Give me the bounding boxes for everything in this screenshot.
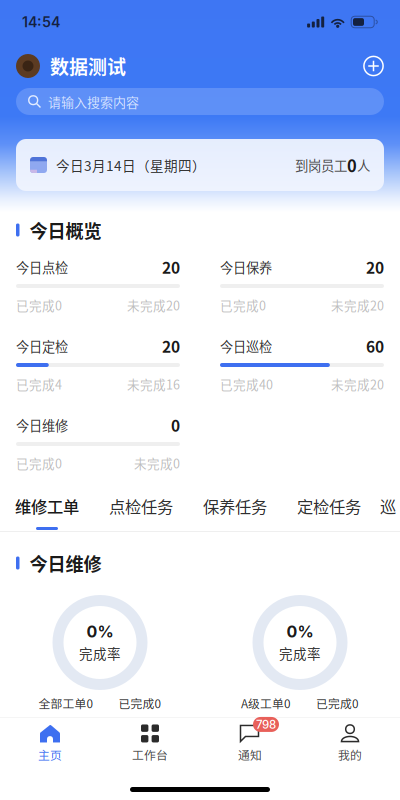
staticText: 今日3月14日（星期四） <box>56 155 206 175</box>
button[interactable]: 新增 <box>363 55 384 76</box>
staticText: 未完成20 <box>331 375 384 393</box>
staticText: 未完成16 <box>127 375 180 393</box>
staticText: 已完成0 <box>220 296 266 314</box>
staticText: 数据测试 <box>50 52 126 80</box>
staticText: 今日维修 <box>29 550 101 576</box>
staticText: 定检任务 <box>297 494 361 518</box>
staticText: 今日概览 <box>29 217 101 243</box>
staticText: 798 <box>256 717 276 731</box>
staticText: 14:54 <box>22 13 60 31</box>
staticText: 已完成40 <box>220 375 273 393</box>
staticText: 60 <box>366 335 384 357</box>
staticText: 已完成0 <box>16 454 62 472</box>
staticText: 20 <box>162 335 180 357</box>
staticText: 今日维修 <box>16 415 68 434</box>
staticText: 未完成20 <box>331 296 384 314</box>
staticText: 点检任务 <box>109 494 173 518</box>
button[interactable]: 巡 <box>376 485 400 531</box>
button[interactable]: 保养任务 <box>188 485 282 531</box>
staticText: 完成率 <box>279 643 321 663</box>
button[interactable]: 798 <box>200 718 300 768</box>
staticText: 巡 <box>380 494 396 518</box>
button[interactable]: 我的 <box>300 718 400 768</box>
staticText: 保养任务 <box>203 494 267 518</box>
button[interactable]: 定检任务 <box>282 485 376 531</box>
staticText: 已完成4 <box>16 375 62 393</box>
staticText: 全部工单0 <box>38 694 93 712</box>
staticText: 人 <box>357 155 370 175</box>
staticText: 0% <box>86 622 113 641</box>
staticText: 0 <box>171 414 180 436</box>
staticText: 已完成0 <box>316 694 359 712</box>
staticText: 0 <box>347 153 357 177</box>
button[interactable]: 点检任务 <box>94 485 188 531</box>
button[interactable]: 维修工单 <box>0 485 94 531</box>
staticText: 20 <box>366 256 384 278</box>
staticText: 到岗员工 <box>295 155 347 175</box>
button[interactable]: 请输入搜索内容 <box>0 88 400 115</box>
staticText: 我的 <box>338 746 362 763</box>
button[interactable]: 主页 <box>0 718 100 768</box>
staticText: 未完成20 <box>127 296 180 314</box>
staticText: 今日保养 <box>220 257 272 276</box>
staticText: 已完成0 <box>118 694 161 712</box>
staticText: 工作台 <box>132 746 168 763</box>
staticText: 今日点检 <box>16 257 68 276</box>
staticText: 完成率 <box>79 643 121 663</box>
button[interactable]: 工作台 <box>100 718 200 768</box>
staticText: 已完成0 <box>16 296 62 314</box>
staticText: 请输入搜索内容 <box>48 92 139 111</box>
staticText: 0% <box>286 622 313 641</box>
staticText: A级工单0 <box>241 694 291 712</box>
staticText: 20 <box>162 256 180 278</box>
staticText: 今日定检 <box>16 336 68 355</box>
staticText: 今日巡检 <box>220 336 272 355</box>
staticText: 通知 <box>238 746 262 763</box>
staticText: 维修工单 <box>15 494 79 518</box>
staticText: 未完成0 <box>134 454 180 472</box>
staticText: 主页 <box>38 746 62 763</box>
